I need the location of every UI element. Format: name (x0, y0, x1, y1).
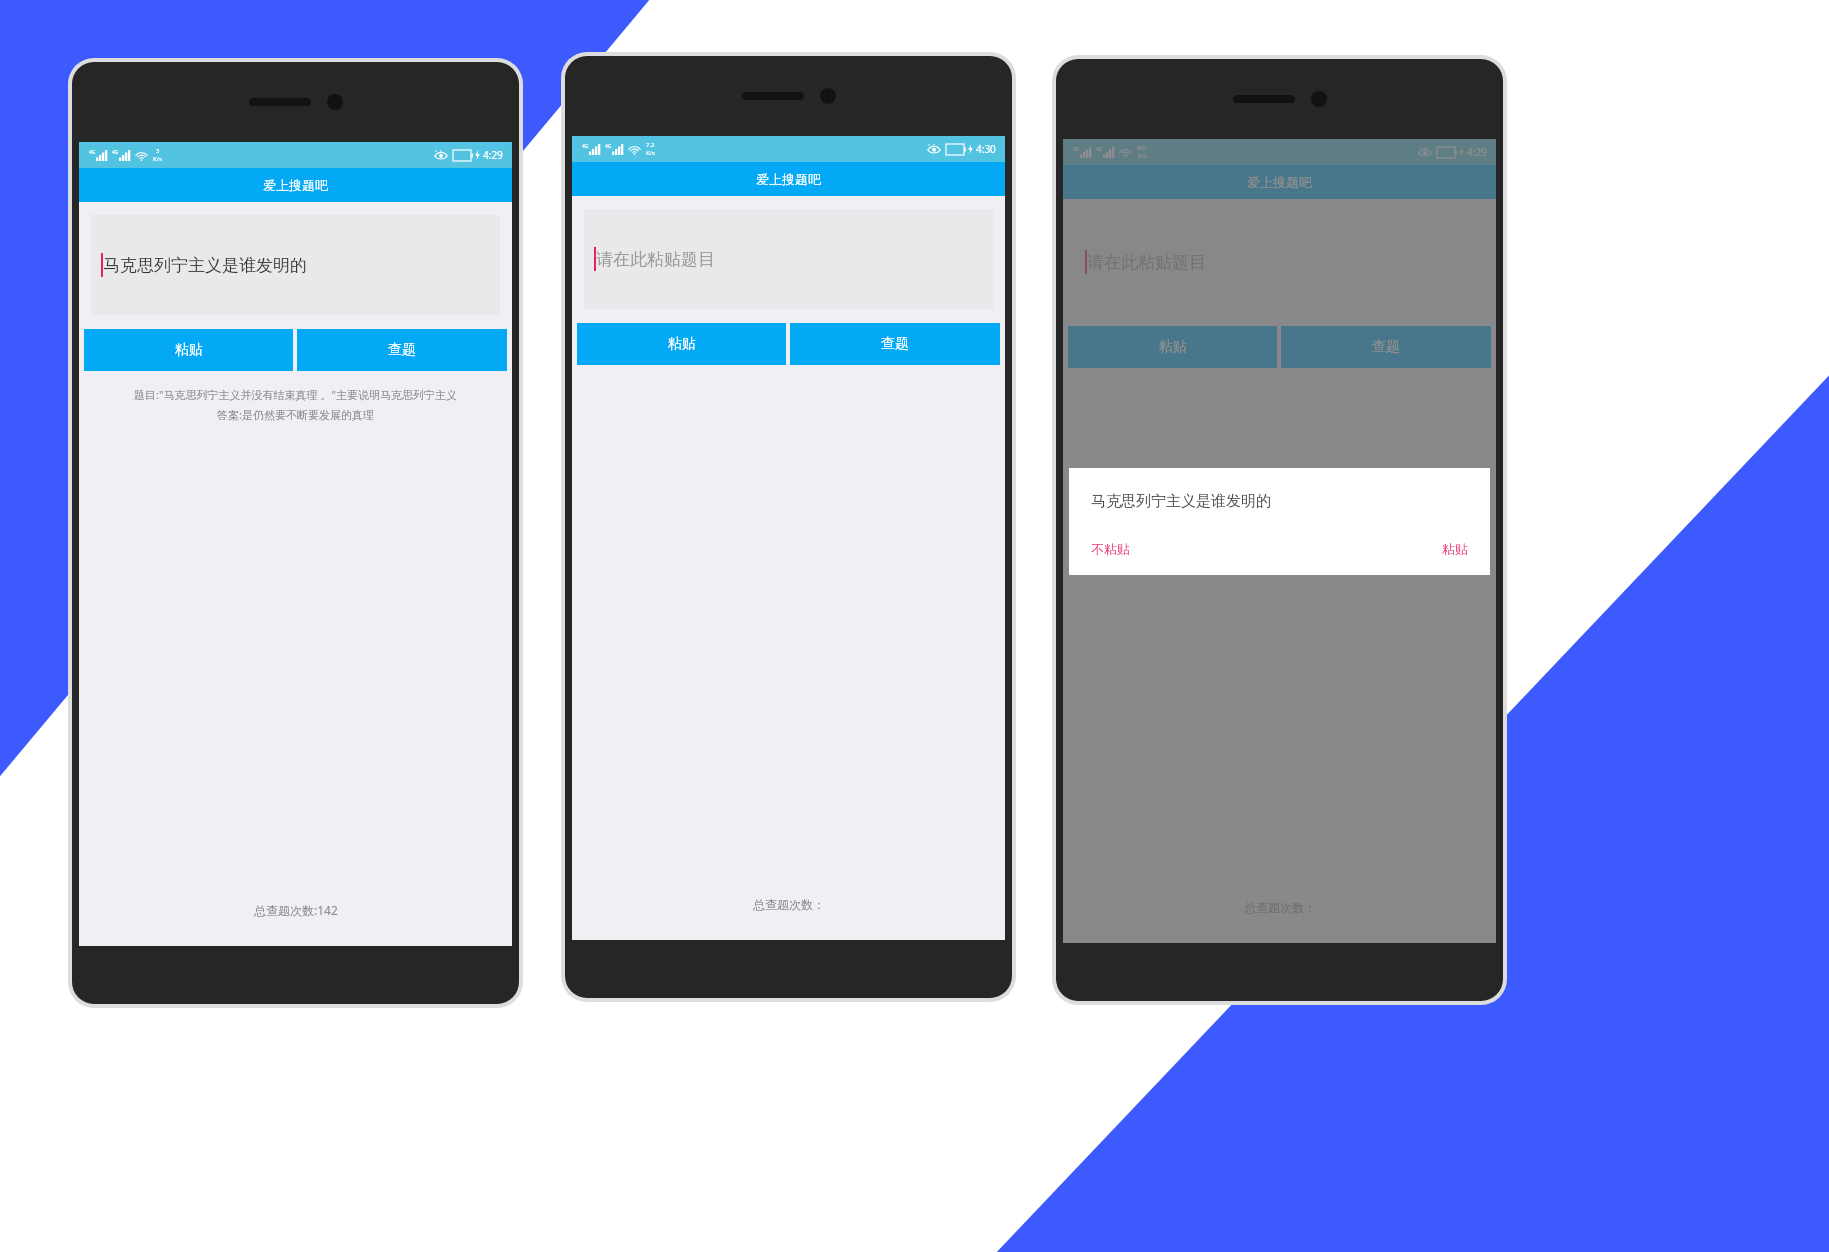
staticText: 查题 (881, 335, 909, 353)
staticText: 4G (89, 149, 96, 156)
staticText: 总查题次数： (753, 897, 825, 912)
button[interactable]: 马克思列宁主义是谁发明的 (91, 215, 500, 315)
staticText: 3 (156, 147, 160, 155)
staticText: 马克思列宁主义是谁发明的 (1091, 492, 1271, 511)
staticText: 861 (1137, 144, 1148, 152)
button[interactable]: 查题 (790, 323, 1000, 365)
button[interactable]: 粘贴 (1434, 537, 1476, 561)
staticText: 4G (1096, 146, 1103, 153)
staticText: 请在此粘贴题目 (596, 249, 715, 270)
staticText: 4G (1073, 146, 1080, 153)
staticText: 4G (605, 143, 612, 150)
staticText: 爱上搜题吧 (263, 177, 328, 193)
button[interactable]: 请在此粘贴题目 (1075, 212, 1484, 312)
staticText: 查题 (1372, 338, 1400, 356)
staticText: 总查题次数:142 (254, 902, 338, 918)
staticText: 爱上搜题吧 (756, 171, 821, 187)
staticText: 粘贴 (1442, 541, 1468, 557)
staticText: 4:29 (483, 148, 503, 162)
staticText: 4G (582, 143, 589, 150)
staticText: 4:29 (1467, 145, 1487, 159)
staticText: 粘贴 (175, 341, 203, 359)
staticText: 4G (112, 149, 119, 156)
staticText: 粘贴 (668, 335, 696, 353)
staticText: 马克思列宁主义是谁发明的 (103, 255, 307, 276)
button[interactable]: 请在此粘贴题目 (584, 209, 993, 309)
staticText: 爱上搜题吧 (1247, 174, 1312, 190)
staticText: 不粘贴 (1091, 541, 1130, 557)
button[interactable]: 查题 (297, 329, 507, 371)
button[interactable]: 粘贴 (577, 323, 786, 365)
staticText: 请在此粘贴题目 (1087, 252, 1206, 273)
staticText: 答案:是仍然要不断要发展的真理 (217, 407, 374, 422)
button[interactable]: 查题 (1281, 326, 1491, 368)
staticText: K/s (646, 149, 655, 157)
staticText: K/s (153, 155, 162, 163)
button[interactable]: 不粘贴 (1083, 537, 1138, 561)
staticText: 总查题次数： (1244, 900, 1316, 915)
staticText: 查题 (388, 341, 416, 359)
staticText: 7.2 (646, 141, 655, 149)
staticText: K/s (1138, 152, 1147, 160)
staticText: 题目:"马克思列宁主义并没有结束真理 。"主要说明马克思列宁主义 (134, 387, 457, 402)
button[interactable]: 粘贴 (84, 329, 293, 371)
staticText: 4:30 (976, 142, 996, 156)
button[interactable]: 粘贴 (1068, 326, 1277, 368)
staticText: 粘贴 (1159, 338, 1187, 356)
